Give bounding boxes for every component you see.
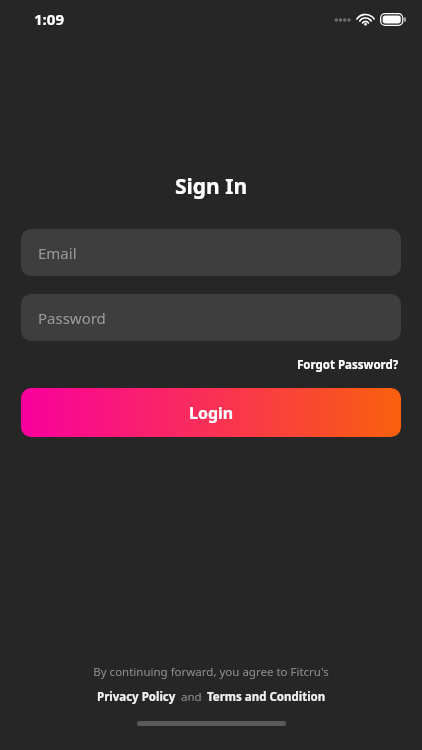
button[interactable]: Privacy Policy — [96, 687, 177, 707]
staticText: By continuing forward, you agree to Fitc… — [93, 664, 329, 680]
button[interactable]: Forgot Password? — [295, 354, 401, 376]
staticText: Email — [38, 243, 77, 263]
staticText: Login — [189, 402, 234, 424]
staticText: Password — [38, 308, 106, 328]
staticText: Sign In — [175, 172, 248, 201]
staticText: Forgot Password? — [297, 357, 399, 373]
staticText: Privacy Policy — [97, 689, 176, 705]
staticText: 1:09 — [34, 9, 64, 29]
button[interactable]: Email — [21, 229, 401, 276]
staticText: and — [181, 689, 202, 705]
staticText: Terms and Condition — [207, 689, 326, 705]
button[interactable]: Password — [21, 294, 401, 341]
button[interactable]: Terms and Condition — [206, 687, 327, 707]
button[interactable]: Login — [21, 388, 401, 437]
